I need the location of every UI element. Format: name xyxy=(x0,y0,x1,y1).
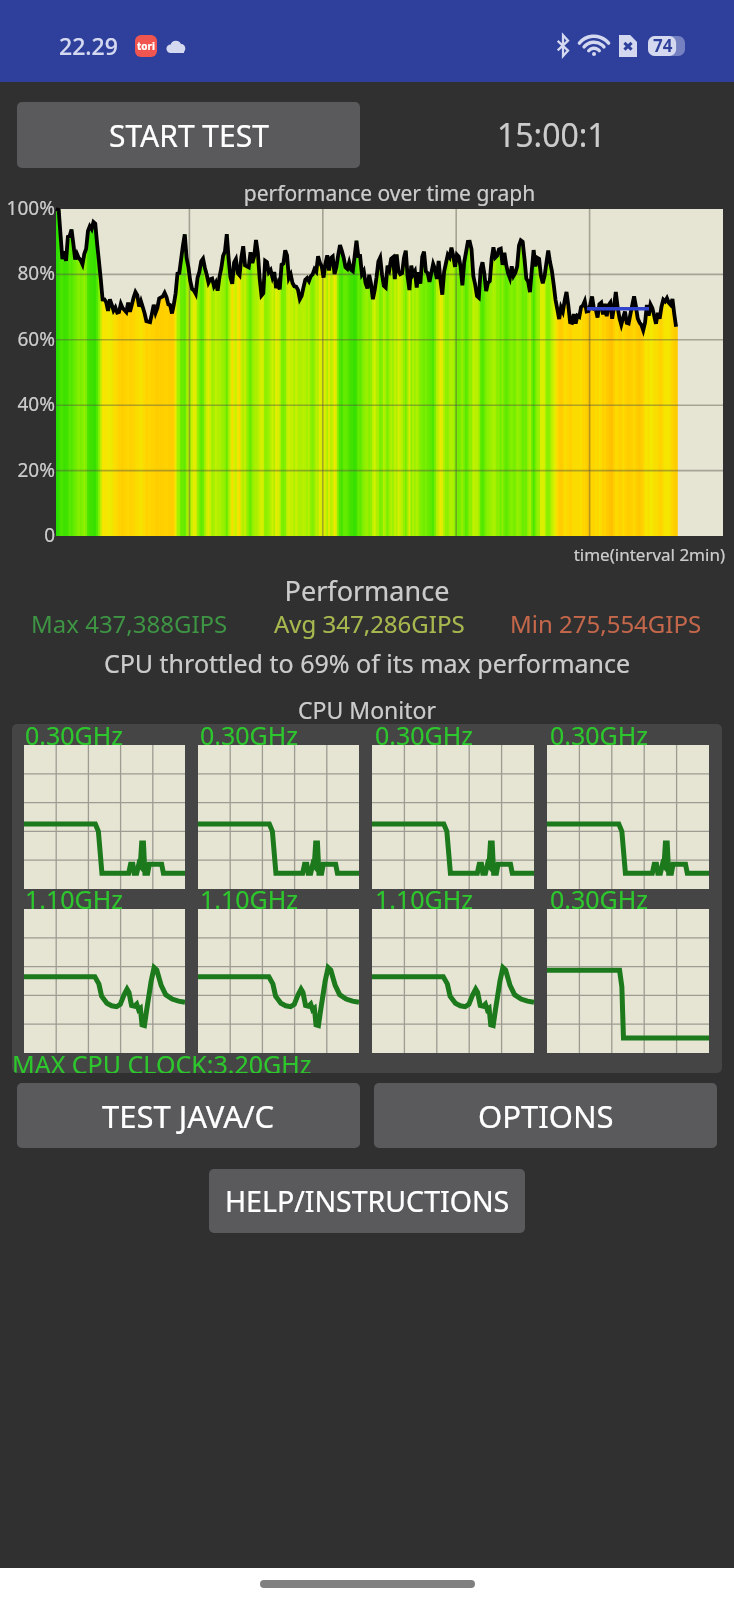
staticText: tori xyxy=(137,39,156,53)
staticText: 20% xyxy=(17,457,55,483)
staticText: 40% xyxy=(17,391,55,417)
button[interactable]: START TEST xyxy=(17,102,360,168)
staticText: performance over time graph xyxy=(56,179,723,208)
button[interactable]: TEST JAVA/C xyxy=(17,1083,360,1148)
button[interactable]: HELP/INSTRUCTIONS xyxy=(209,1169,525,1233)
staticText: Min 275,554GIPS xyxy=(510,607,702,640)
staticText: OPTIONS xyxy=(478,1095,614,1137)
staticText: CPU throttled to 69% of its max performa… xyxy=(0,646,734,680)
staticText: 0.30GHz xyxy=(25,724,124,752)
staticText: HELP/INSTRUCTIONS xyxy=(225,1182,510,1221)
staticText: 100% xyxy=(6,195,55,221)
staticText: 0 xyxy=(44,522,55,548)
staticText: time(interval 2min) xyxy=(0,543,725,566)
staticText: Avg 347,286GIPS xyxy=(274,607,465,640)
staticText: 0.30GHz xyxy=(200,724,299,752)
staticText: 60% xyxy=(17,326,55,352)
staticText: TEST JAVA/C xyxy=(102,1095,275,1137)
staticText: 80% xyxy=(17,260,55,286)
staticText: Max 437,388GIPS xyxy=(31,607,228,640)
staticText: Performance xyxy=(0,572,734,609)
staticText: 74 xyxy=(653,34,673,57)
staticText: 0.30GHz xyxy=(550,882,649,916)
staticText: 0.30GHz xyxy=(375,724,474,752)
staticText: 22.29 xyxy=(59,30,118,61)
staticText: 15:00:1 xyxy=(497,113,606,157)
button[interactable]: OPTIONS xyxy=(374,1083,717,1148)
staticText: CPU Monitor xyxy=(0,694,734,725)
staticText: 1.10GHz xyxy=(25,882,124,916)
staticText: 1.10GHz xyxy=(375,882,474,916)
staticText: START TEST xyxy=(109,115,269,156)
staticText: 0.30GHz xyxy=(550,724,649,752)
staticText: MAX CPU CLOCK:3.20GHz xyxy=(12,1047,312,1073)
staticText: 1.10GHz xyxy=(200,882,299,916)
